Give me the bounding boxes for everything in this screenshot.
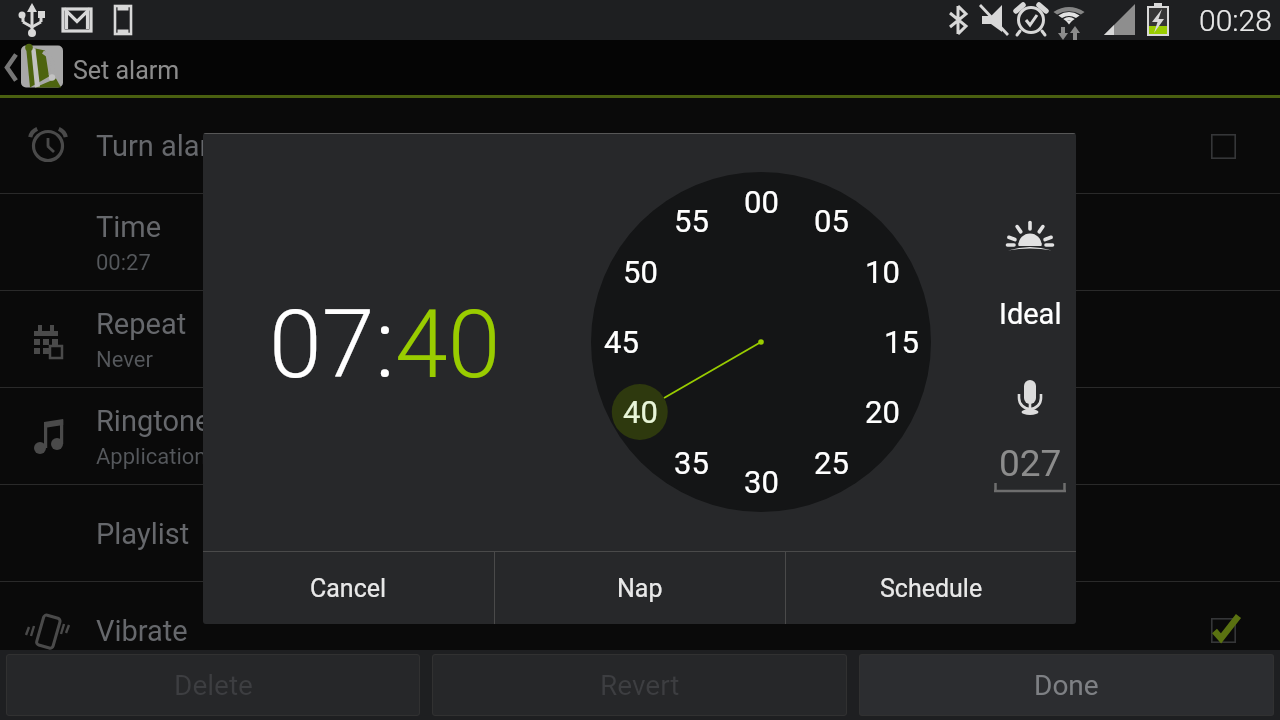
staticText: Revert [600,669,680,702]
button[interactable]: 30 [735,456,787,508]
staticText: : [375,289,395,400]
button[interactable]: 15 [875,316,927,368]
staticText: 35 [674,445,709,481]
button[interactable]: Done [859,654,1274,716]
button[interactable]: 40 [614,386,666,438]
staticText: 027 [999,442,1062,485]
button[interactable]: 45 [595,316,647,368]
button[interactable]: Vibrate [0,582,1280,650]
staticText: 00:28 [1199,3,1272,38]
staticText: Vibrate [96,614,188,648]
button[interactable]: 40 [395,289,501,400]
button[interactable]: Revert [432,654,847,716]
staticText: 50 [623,254,658,290]
staticText: Done [1034,669,1099,702]
button[interactable]: Delete [6,654,420,716]
button[interactable]: Repeat [0,291,1280,388]
button[interactable]: Ideal [999,294,1062,334]
staticText: 05 [814,203,849,239]
staticText: 30 [744,464,779,500]
button[interactable]: 55 [665,195,717,247]
button[interactable]: 35 [665,437,717,489]
staticText: 00:27 [96,250,151,276]
button[interactable]: Set alarm, navigate up [0,40,1280,95]
button[interactable]: Ringtone [0,388,1280,485]
button[interactable]: Turn alarm on [0,98,1280,194]
button[interactable]: Playlist [0,485,1280,582]
button[interactable]: Time [0,194,1280,291]
staticText: 25 [814,445,849,481]
staticText: Set alarm [73,56,180,85]
staticText: Turn alarm on [96,129,275,163]
button[interactable]: 25 [805,437,857,489]
staticText: Cancel [310,574,387,603]
staticText: 00 [744,184,779,220]
staticText: Application default [96,444,281,470]
button[interactable]: Voice input [1000,368,1060,428]
staticText: Ideal [999,297,1062,331]
staticText: 55 [674,203,709,239]
staticText: Repeat [96,307,187,341]
staticText: 45 [604,324,639,360]
staticText: Time [96,210,162,244]
button[interactable]: 07 [269,289,375,400]
staticText: 40 [623,394,658,430]
staticText: 15 [884,324,919,360]
button[interactable]: 10 [856,246,908,298]
staticText: Never [96,347,153,373]
staticText: Schedule [880,574,983,603]
button[interactable]: 00 [735,176,787,228]
staticText: Ringtone [96,404,211,438]
button[interactable]: Schedule [786,552,1076,624]
staticText: 10 [865,254,900,290]
staticText: Nap [617,574,663,603]
button[interactable]: Cancel [203,552,494,624]
button[interactable]: 50 [614,246,666,298]
button[interactable]: 20 [856,386,908,438]
button[interactable]: Ideal wake-up time [994,202,1066,274]
staticText: Delete [174,669,253,702]
staticText: Playlist [96,517,190,551]
button[interactable]: 027 [988,442,1072,493]
button[interactable]: 05 [805,195,857,247]
button[interactable]: Nap [495,552,785,624]
staticText: 20 [865,394,900,430]
